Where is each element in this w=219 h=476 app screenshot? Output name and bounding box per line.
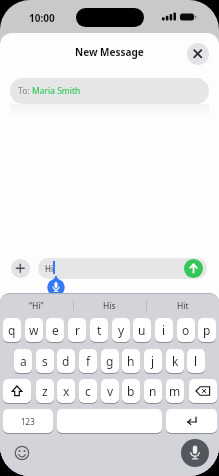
staticText: h — [127, 353, 135, 369]
button[interactable]: His — [73, 294, 146, 317]
staticText: i — [162, 322, 166, 338]
button[interactable]: v — [101, 379, 119, 403]
button[interactable]: Hit — [146, 294, 219, 317]
staticText: q — [8, 322, 16, 338]
staticText: m — [169, 383, 181, 399]
staticText: t — [97, 322, 102, 338]
button[interactable]: “Hi” — [0, 294, 73, 317]
button[interactable]: j — [144, 349, 162, 373]
button[interactable]: e — [46, 318, 64, 342]
staticText: To: — [18, 85, 32, 97]
button[interactable]: 123 — [3, 409, 53, 433]
button[interactable]: c — [79, 379, 97, 403]
button[interactable] — [189, 379, 217, 403]
staticText: x — [63, 383, 70, 399]
button[interactable]: l — [187, 349, 205, 373]
button[interactable]: u — [133, 318, 151, 342]
button[interactable]: o — [177, 318, 195, 342]
staticText: 10:00 — [29, 11, 55, 25]
button[interactable]: f — [79, 349, 97, 373]
button[interactable] — [11, 259, 30, 278]
button[interactable]: y — [112, 318, 130, 342]
button[interactable]: t — [90, 318, 108, 342]
staticText: s — [42, 353, 48, 369]
staticText: v — [107, 383, 114, 399]
button[interactable]: x — [57, 379, 75, 403]
staticText: l — [194, 353, 198, 369]
button[interactable] — [181, 439, 209, 467]
button[interactable]: z — [36, 379, 54, 403]
staticText: Hit — [177, 300, 189, 312]
staticText: e — [52, 322, 59, 338]
staticText: a — [20, 353, 27, 369]
staticText: c — [85, 383, 91, 399]
button[interactable]: Hi — [38, 258, 207, 279]
button[interactable] — [184, 259, 203, 278]
staticText: New Message — [75, 45, 144, 59]
staticText: d — [62, 353, 70, 369]
staticText: n — [149, 383, 157, 399]
button[interactable]: i — [155, 318, 173, 342]
button[interactable]: r — [68, 318, 86, 342]
staticText: Maria Smith — [32, 85, 81, 97]
button[interactable]: h — [122, 349, 140, 373]
staticText: b — [127, 383, 135, 399]
button[interactable]: d — [57, 349, 75, 373]
staticText: r — [75, 322, 80, 338]
staticText: f — [86, 353, 91, 369]
staticText: His — [103, 300, 116, 312]
button[interactable]: k — [166, 349, 184, 373]
staticText: y — [118, 322, 125, 338]
button[interactable]: b — [122, 379, 140, 403]
button[interactable]: s — [36, 349, 54, 373]
button[interactable]: g — [101, 349, 119, 373]
staticText: o — [182, 322, 190, 338]
button[interactable]: n — [144, 379, 162, 403]
button[interactable]: p — [198, 318, 216, 342]
staticText: u — [138, 322, 146, 338]
button[interactable]: m — [166, 379, 184, 403]
button[interactable]: q — [3, 318, 21, 342]
staticText: “Hi” — [29, 300, 44, 312]
button[interactable] — [57, 409, 162, 433]
staticText: 123 — [21, 416, 35, 427]
button[interactable]: To: — [10, 78, 209, 104]
staticText: j — [151, 353, 155, 369]
button[interactable] — [187, 43, 209, 65]
staticText: k — [172, 353, 179, 369]
staticText: w — [29, 322, 39, 338]
button[interactable]: w — [25, 318, 43, 342]
button[interactable] — [14, 445, 30, 461]
staticText: p — [203, 322, 211, 338]
staticText: g — [106, 353, 114, 369]
staticText: z — [42, 383, 48, 399]
button[interactable] — [166, 409, 217, 433]
staticText: Hi — [45, 263, 53, 274]
button[interactable] — [3, 379, 31, 403]
button[interactable]: a — [14, 349, 32, 373]
